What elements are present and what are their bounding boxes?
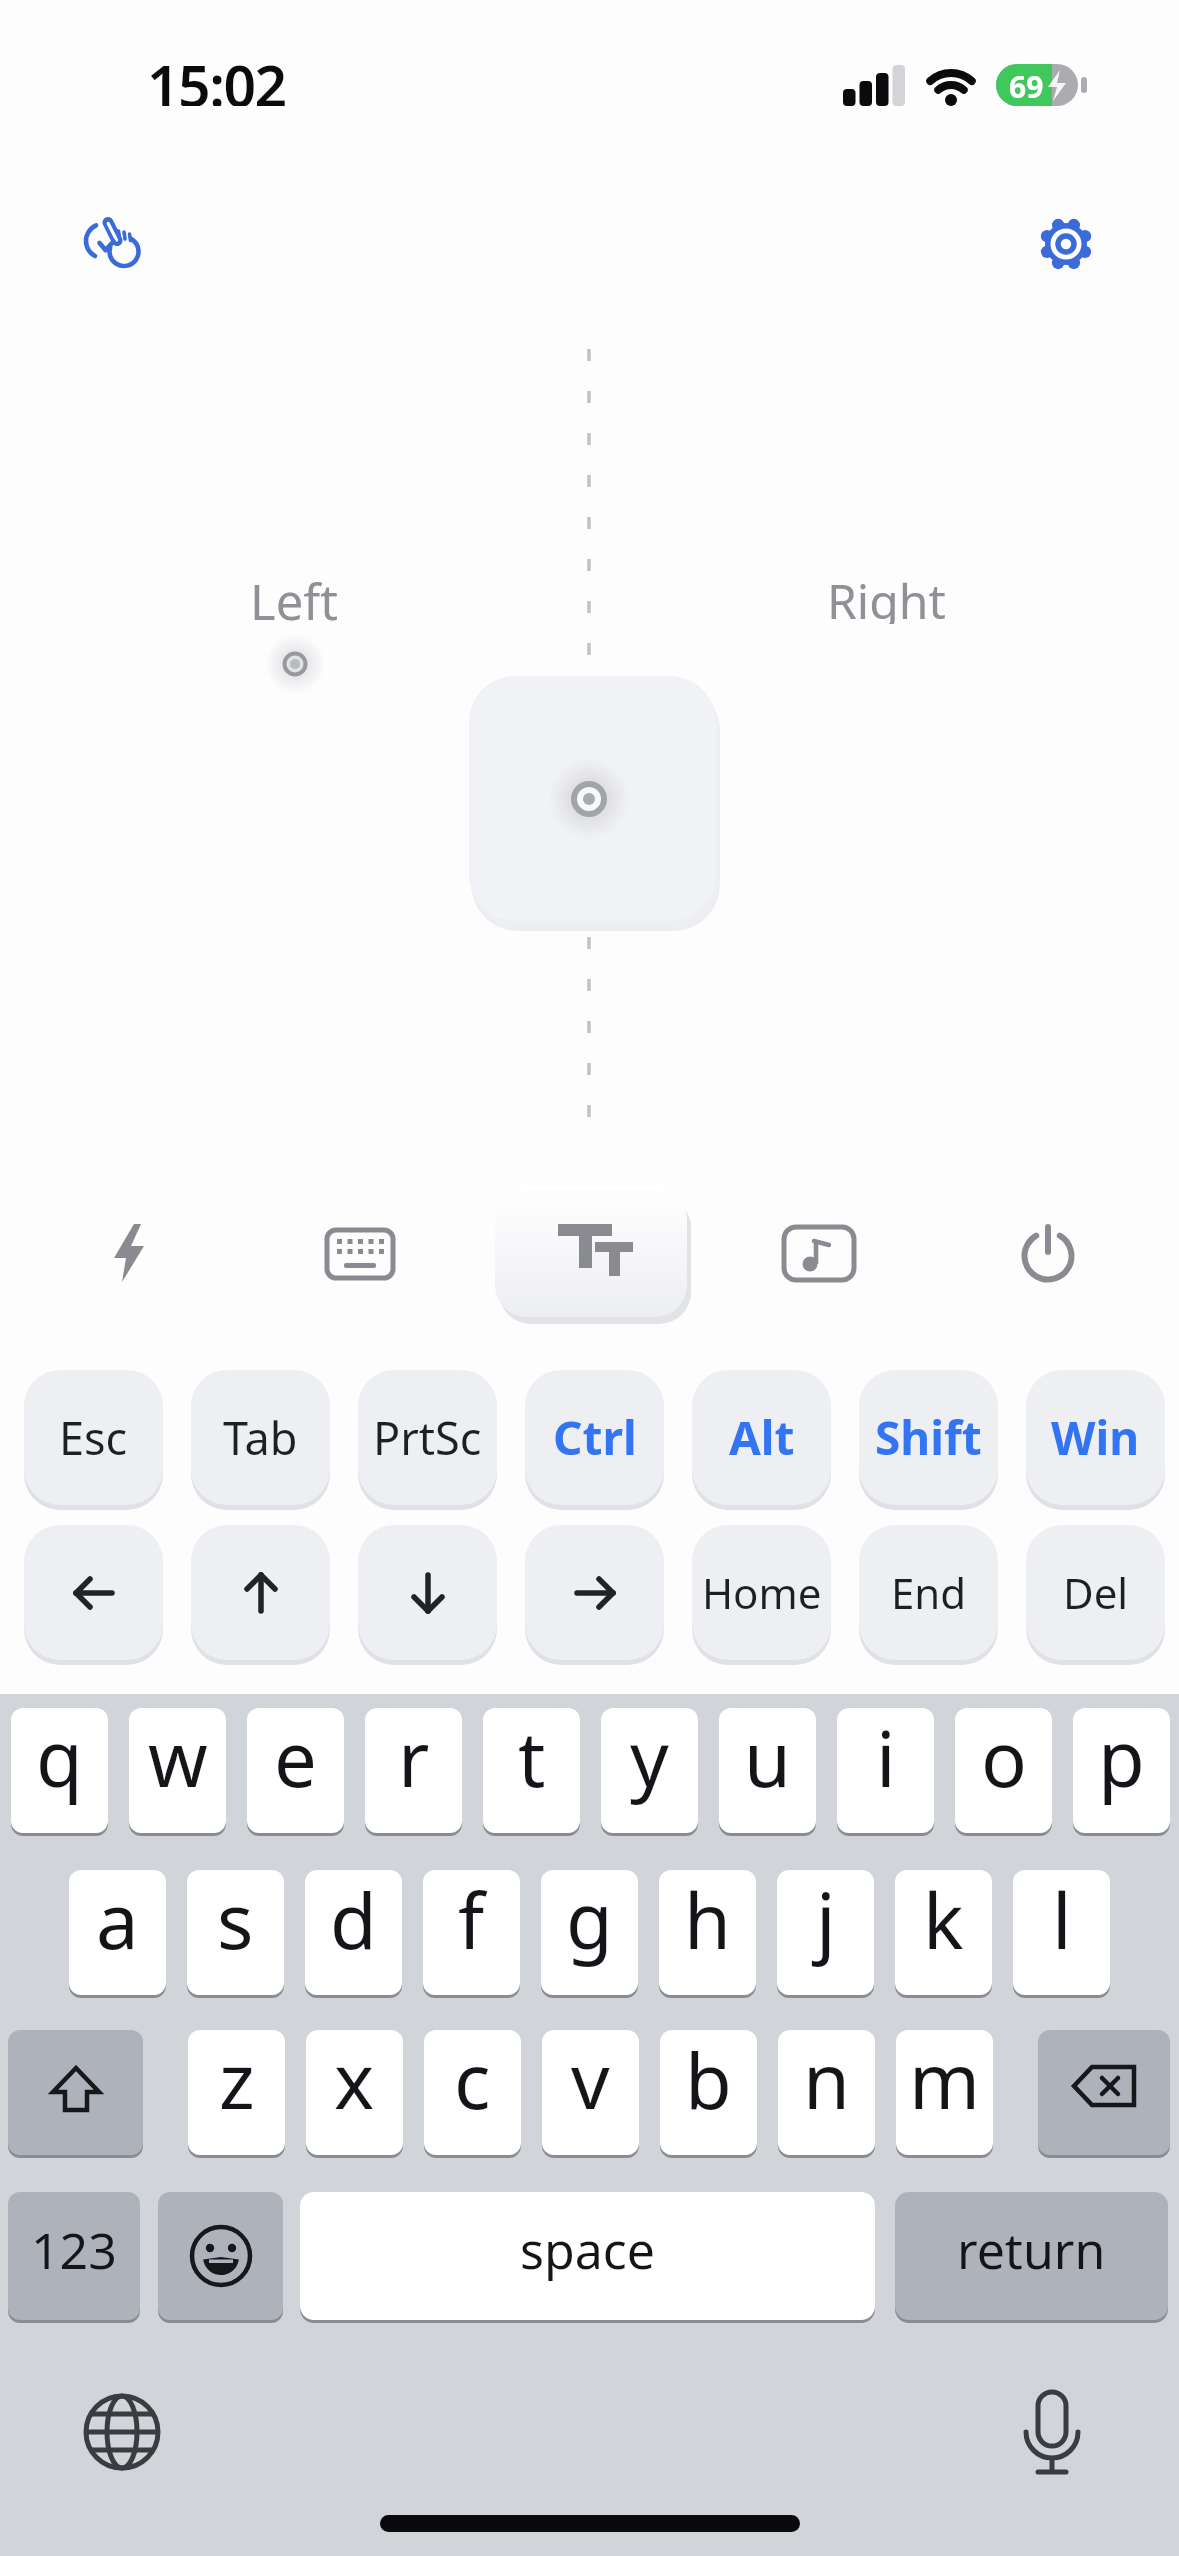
button[interactable]: i xyxy=(837,1708,934,1833)
staticText: Shift xyxy=(875,1406,982,1469)
staticText: Right xyxy=(827,568,946,624)
button[interactable]: y xyxy=(601,1708,698,1833)
button[interactable]: f xyxy=(423,1870,520,1995)
button[interactable]: v xyxy=(542,2030,639,2155)
button[interactable] xyxy=(495,1186,687,1317)
staticText: j xyxy=(816,1870,836,1972)
button[interactable]: 123 xyxy=(8,2192,140,2320)
button[interactable] xyxy=(1036,214,1096,274)
staticText: c xyxy=(454,2030,491,2132)
button[interactable]: space xyxy=(300,2192,875,2320)
staticText: Ctrl xyxy=(553,1406,637,1469)
button[interactable]: n xyxy=(778,2030,875,2155)
button[interactable] xyxy=(1038,2030,1170,2155)
staticText: 15:02 xyxy=(147,46,286,106)
staticText: l xyxy=(1052,1870,1072,1972)
button[interactable]: z xyxy=(188,2030,285,2155)
staticText: Win xyxy=(1051,1406,1140,1469)
button[interactable]: r xyxy=(365,1708,462,1833)
staticText: space xyxy=(520,2216,655,2284)
button[interactable]: End xyxy=(859,1525,998,1660)
staticText: v xyxy=(571,2030,610,2132)
button[interactable] xyxy=(24,1525,163,1660)
staticText: k xyxy=(923,1870,964,1972)
staticText: return xyxy=(957,2216,1106,2284)
button[interactable]: Esc xyxy=(24,1370,163,1505)
button[interactable]: l xyxy=(1013,1870,1110,1995)
button[interactable]: Tab xyxy=(191,1370,330,1505)
button[interactable] xyxy=(727,1187,911,1318)
staticText: z xyxy=(219,2030,255,2132)
button[interactable] xyxy=(782,1226,856,1284)
button[interactable] xyxy=(323,1223,397,1283)
staticText: h xyxy=(684,1870,731,1972)
button[interactable]: w xyxy=(129,1708,226,1833)
button[interactable]: Del xyxy=(1026,1525,1165,1660)
button[interactable]: m xyxy=(896,2030,993,2155)
button[interactable]: u xyxy=(719,1708,816,1833)
staticText: u xyxy=(744,1708,791,1810)
staticText: a xyxy=(96,1870,139,1972)
staticText: Esc xyxy=(59,1407,128,1468)
staticText: g xyxy=(566,1870,613,1972)
button[interactable] xyxy=(956,1187,1140,1318)
button[interactable]: b xyxy=(660,2030,757,2155)
button[interactable]: h xyxy=(659,1870,756,1995)
staticText: 123 xyxy=(31,2216,117,2284)
button[interactable] xyxy=(1012,2388,1092,2484)
staticText: w xyxy=(148,1708,208,1810)
button[interactable] xyxy=(158,2192,283,2320)
staticText: r xyxy=(398,1708,430,1810)
button[interactable]: o xyxy=(955,1708,1052,1833)
button[interactable]: g xyxy=(541,1870,638,1995)
staticText: Home xyxy=(702,1564,822,1621)
button[interactable]: Shift xyxy=(859,1370,998,1505)
staticText: m xyxy=(909,2030,981,2132)
button[interactable] xyxy=(525,1525,664,1660)
button[interactable] xyxy=(80,210,150,275)
button[interactable]: Home xyxy=(692,1525,831,1660)
button[interactable]: k xyxy=(895,1870,992,1995)
button[interactable] xyxy=(80,2390,164,2474)
staticText: x xyxy=(334,2030,375,2132)
button[interactable] xyxy=(469,676,716,921)
button[interactable]: e xyxy=(247,1708,344,1833)
button[interactable] xyxy=(98,1221,162,1285)
button[interactable]: Alt xyxy=(692,1370,831,1505)
staticText: Del xyxy=(1063,1564,1129,1621)
button[interactable]: return xyxy=(895,2192,1168,2320)
button[interactable]: Ctrl xyxy=(525,1370,664,1505)
button[interactable]: Win xyxy=(1026,1370,1165,1505)
button[interactable]: d xyxy=(305,1870,402,1995)
staticText: b xyxy=(685,2030,732,2132)
button[interactable] xyxy=(1016,1222,1080,1286)
staticText: End xyxy=(891,1564,967,1621)
button[interactable]: s xyxy=(187,1870,284,1995)
staticText: PrtSc xyxy=(373,1407,482,1468)
staticText: y xyxy=(630,1708,669,1810)
staticText: t xyxy=(518,1708,546,1810)
button[interactable]: q xyxy=(11,1708,108,1833)
button[interactable]: j xyxy=(777,1870,874,1995)
button[interactable]: p xyxy=(1073,1708,1170,1833)
staticText: i xyxy=(876,1708,896,1810)
button[interactable] xyxy=(358,1525,497,1660)
staticText: e xyxy=(274,1708,317,1810)
staticText: 69 xyxy=(1009,66,1044,104)
staticText: f xyxy=(458,1870,485,1972)
staticText: p xyxy=(1098,1708,1145,1810)
button[interactable]: c xyxy=(424,2030,521,2155)
staticText: Left xyxy=(250,568,338,624)
staticText: q xyxy=(36,1708,83,1810)
staticText: n xyxy=(803,2030,850,2132)
staticText: s xyxy=(217,1870,254,1972)
button[interactable]: t xyxy=(483,1708,580,1833)
button[interactable]: a xyxy=(69,1870,166,1995)
button[interactable] xyxy=(191,1525,330,1660)
button[interactable] xyxy=(8,2030,143,2155)
button[interactable]: PrtSc xyxy=(358,1370,497,1505)
button[interactable] xyxy=(268,1187,452,1318)
button[interactable] xyxy=(38,1187,222,1318)
button[interactable]: x xyxy=(306,2030,403,2155)
staticText: d xyxy=(330,1870,377,1972)
